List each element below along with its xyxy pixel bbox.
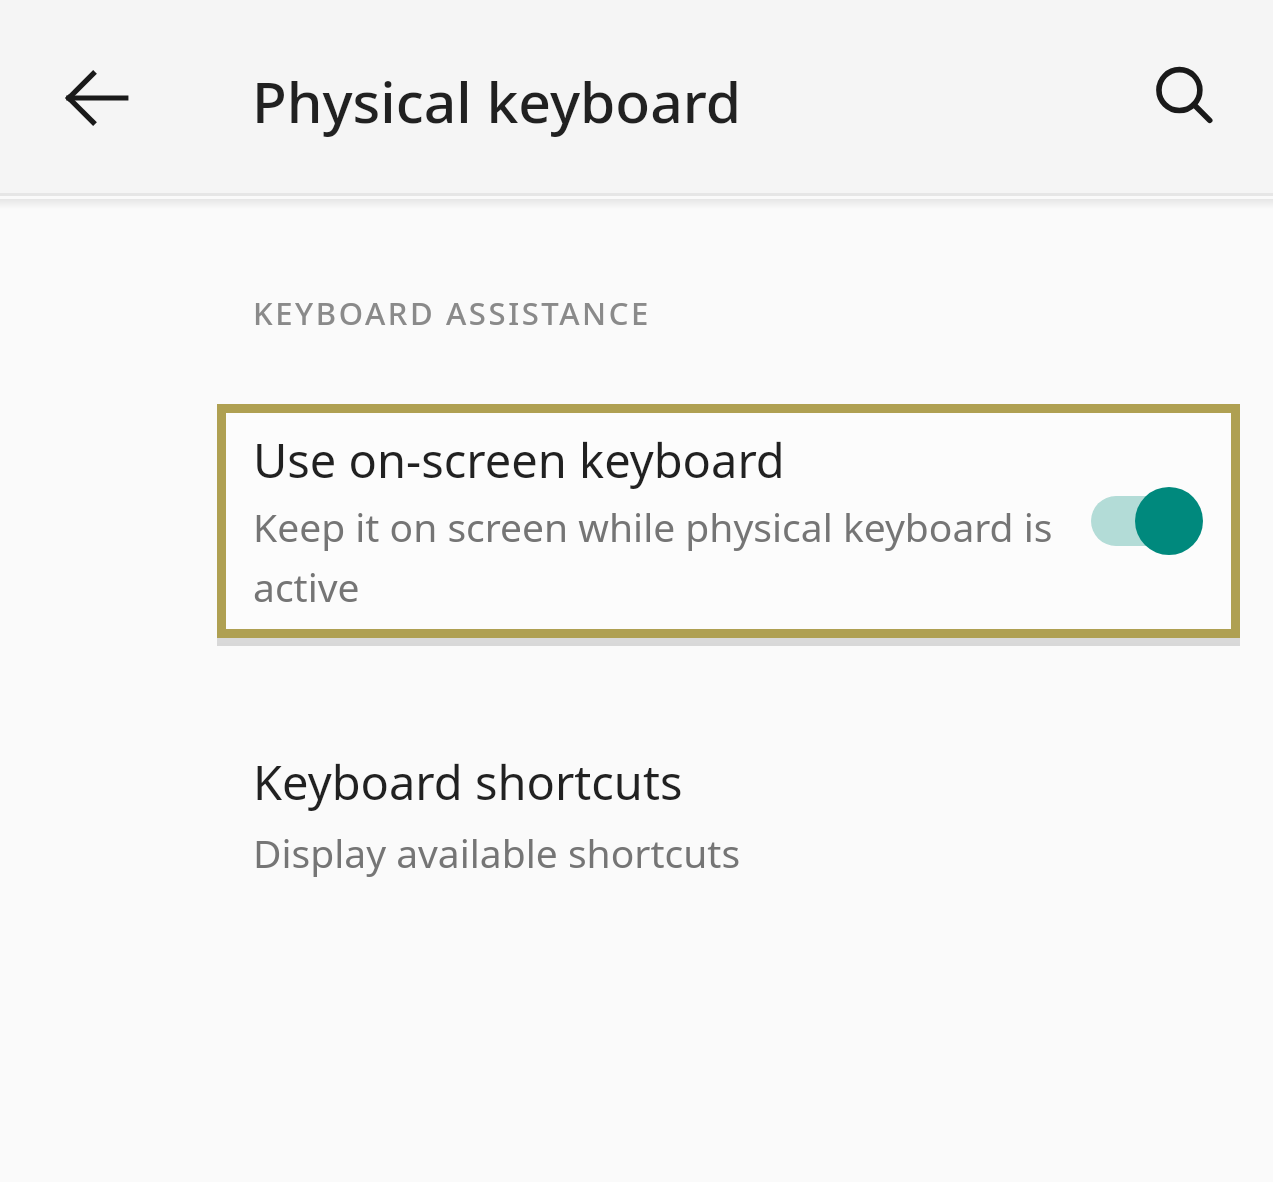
- staticText: KEYBOARD ASSISTANCE: [253, 292, 651, 334]
- button[interactable]: Search: [1134, 46, 1238, 150]
- button[interactable]: Back: [44, 45, 150, 151]
- button[interactable]: Use on-screen keyboard toggle: [1085, 482, 1209, 560]
- staticText: Keep it on screen while physical keyboar…: [253, 500, 1069, 614]
- staticText: Keyboard shortcuts: [253, 750, 683, 814]
- button[interactable]: Use on-screen keyboard: [226, 413, 1231, 629]
- button[interactable]: Keyboard shortcuts: [0, 736, 1273, 903]
- staticText: Use on-screen keyboard: [253, 428, 785, 492]
- staticText: Physical keyboard: [252, 62, 742, 140]
- staticText: Display available shortcuts: [253, 826, 741, 879]
